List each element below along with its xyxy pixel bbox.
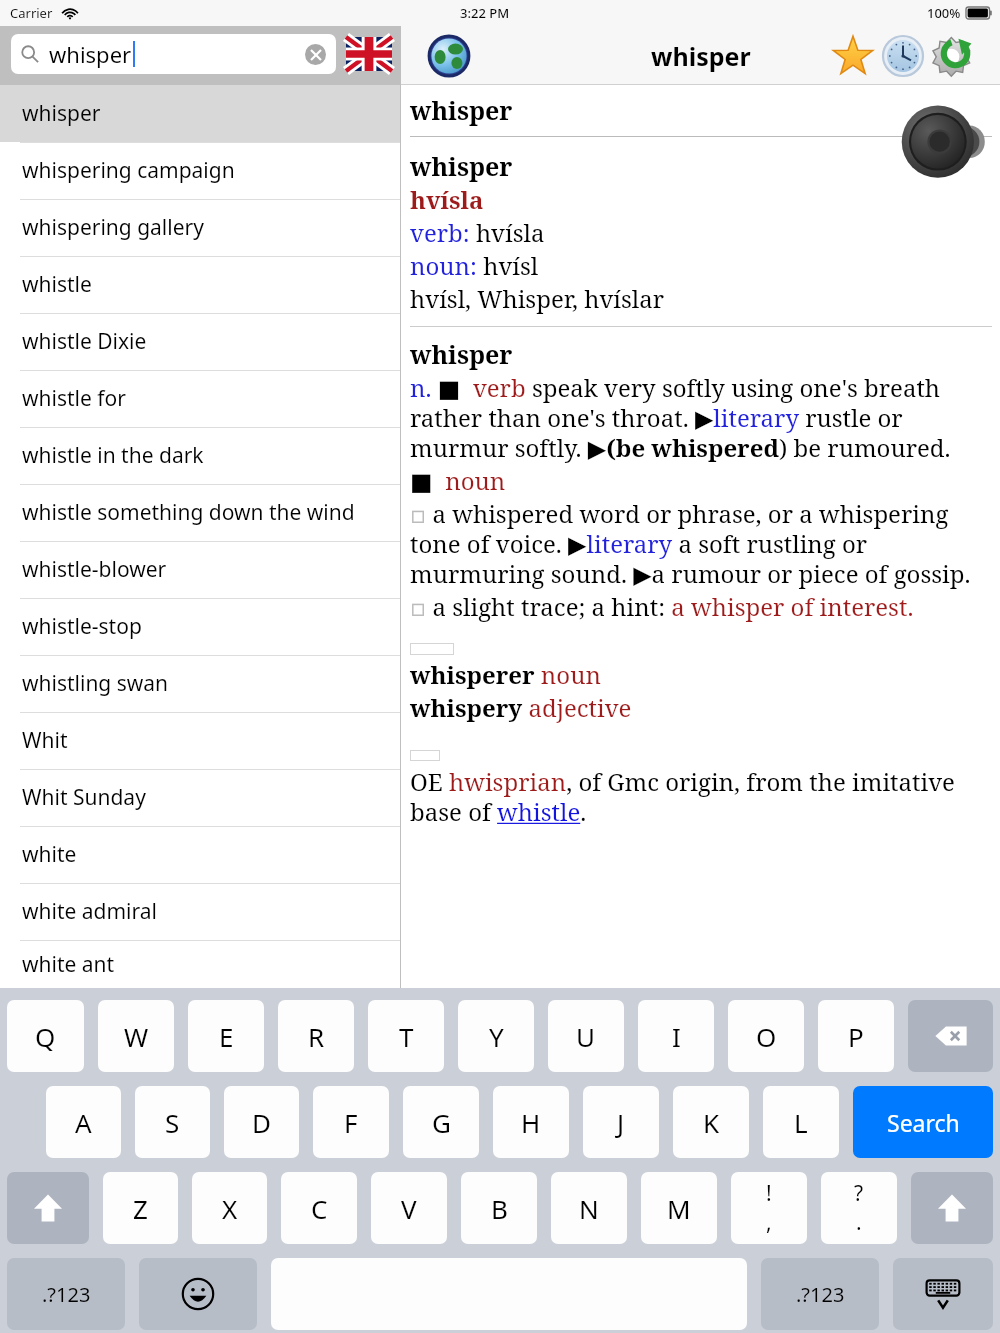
button[interactable]: U [548,1000,624,1072]
button[interactable]: Q [7,1000,84,1072]
staticText: whistling swan [22,669,169,698]
staticText: ▫ a whispered word or phrase, or a whisp… [410,497,992,590]
button[interactable]: B [461,1172,537,1244]
button[interactable]: Language globe [427,34,471,78]
button[interactable]: Clear text [305,44,326,65]
button[interactable]: D [224,1086,299,1158]
button[interactable]: whistle-blower [0,541,400,598]
button[interactable]: whistle-stop [0,598,400,655]
staticText: whisper [410,149,513,183]
staticText: ▫ a slight trace; a hint: a whisper of i… [410,590,914,623]
button[interactable]: C [281,1172,357,1244]
button[interactable]: white admiral [0,883,400,940]
button[interactable]: Favourites [828,31,878,81]
button[interactable]: whistle in the dark [0,427,400,484]
staticText: whistle something down the wind [22,498,355,527]
button[interactable]: Shift [7,1172,89,1244]
button[interactable]: A [46,1086,121,1158]
staticText: whispering gallery [22,213,204,242]
button[interactable]: F [313,1086,389,1158]
button[interactable]: K [673,1086,749,1158]
button[interactable]: Pronounce [900,97,986,183]
button[interactable]: Backspace [908,1000,993,1072]
button[interactable]: whisper [0,85,400,142]
staticText: 3:22 PM [460,4,510,22]
button[interactable]: whisper [11,34,336,74]
staticText: , [766,1208,772,1237]
staticText: whisperer noun [410,658,601,691]
button[interactable]: white [0,826,400,883]
button[interactable]: V [371,1172,447,1244]
button[interactable]: Settings [928,31,978,81]
button[interactable]: R [278,1000,354,1072]
button[interactable]: W [98,1000,174,1072]
button[interactable]: I [638,1000,714,1072]
button[interactable]: Language: English [346,37,392,71]
button[interactable]: G [403,1086,479,1158]
staticText: whistle Dixie [22,327,147,356]
staticText: ! [766,1179,772,1208]
button[interactable]: white ant [0,940,400,988]
staticText: Whit [22,726,68,755]
staticText: N [579,1191,599,1226]
staticText: W [124,1019,149,1054]
button[interactable]: E [188,1000,264,1072]
staticText: whispery adjective [410,691,632,724]
button[interactable]: ! [731,1172,807,1244]
staticText: V [401,1191,417,1226]
staticText: .?123 [796,1281,845,1308]
button[interactable]: whispering campaign [0,142,400,199]
staticText: whistle [22,270,92,299]
button[interactable]: whistling swan [0,655,400,712]
staticText: whistle for [22,384,126,413]
staticText: Whit Sunday [22,783,146,812]
button[interactable]: S [135,1086,210,1158]
button[interactable]: P [818,1000,894,1072]
button[interactable]: L [763,1086,839,1158]
button[interactable]: Z [103,1172,178,1244]
button[interactable]: whistle for [0,370,400,427]
button[interactable]: whistle something down the wind [0,484,400,541]
staticText: C [311,1191,328,1226]
staticText: L [794,1105,808,1140]
button[interactable]: whistle Dixie [0,313,400,370]
staticText: J [617,1105,625,1140]
button[interactable]: J [583,1086,659,1158]
button[interactable]: Hide keyboard [893,1258,993,1330]
button[interactable]: M [641,1172,717,1244]
staticText: Z [133,1191,148,1226]
button[interactable]: Search [853,1086,993,1158]
staticText: white ant [22,950,115,979]
button[interactable]: Whit [0,712,400,769]
staticText: Y [489,1019,504,1054]
staticText: 100% [927,4,961,22]
button[interactable]: Emoji [139,1258,257,1330]
staticText: whistle in the dark [22,441,204,470]
button[interactable]: O [728,1000,804,1072]
staticText: OE hwisprian, of Gmc origin, from the im… [410,765,992,828]
button[interactable]: ? [821,1172,897,1244]
staticText: .?123 [42,1281,91,1308]
button[interactable]: T [368,1000,444,1072]
staticText: O [756,1019,777,1054]
button[interactable]: Y [458,1000,534,1072]
staticText: whisper [651,39,751,73]
button[interactable]: X [192,1172,267,1244]
staticText: Search [887,1107,960,1138]
button[interactable]: .?123 [7,1258,125,1330]
button[interactable]: History [878,31,928,81]
staticText: F [344,1105,358,1140]
staticText: Q [35,1019,56,1054]
staticText: U [576,1019,596,1054]
button[interactable]: Shift [911,1172,993,1244]
staticText: B [491,1191,508,1226]
button[interactable]: N [551,1172,627,1244]
staticText: whisper [410,93,513,127]
button[interactable]: .?123 [761,1258,879,1330]
button[interactable]: whispering gallery [0,199,400,256]
staticText: I [672,1019,681,1054]
button[interactable]: whistle [0,256,400,313]
button[interactable]: Whit Sunday [0,769,400,826]
button[interactable]: H [493,1086,569,1158]
